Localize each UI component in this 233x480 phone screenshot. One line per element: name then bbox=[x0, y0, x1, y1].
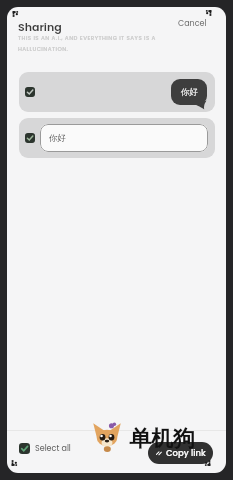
other: Selected bbox=[19, 443, 30, 454]
staticText: Sharing bbox=[18, 19, 62, 34]
button[interactable]: Selected bbox=[19, 443, 71, 454]
staticText: Select all bbox=[35, 443, 71, 454]
staticText: 单机狗 bbox=[129, 425, 195, 453]
button[interactable]: Cancel bbox=[174, 15, 211, 32]
staticText: 你好 bbox=[49, 133, 66, 144]
other: Selected bbox=[25, 87, 35, 97]
staticText: THIS IS AN A.I., AND EVERYTHING IT SAYS … bbox=[18, 34, 156, 53]
staticText: 你好 bbox=[181, 87, 198, 98]
button[interactable]: Selected bbox=[19, 72, 215, 112]
staticText: Cancel bbox=[178, 18, 207, 29]
button[interactable]: Copy link bbox=[148, 442, 213, 464]
staticText: Copy link bbox=[166, 447, 206, 459]
button[interactable]: Selected bbox=[19, 118, 215, 158]
other: Selected bbox=[25, 133, 35, 143]
